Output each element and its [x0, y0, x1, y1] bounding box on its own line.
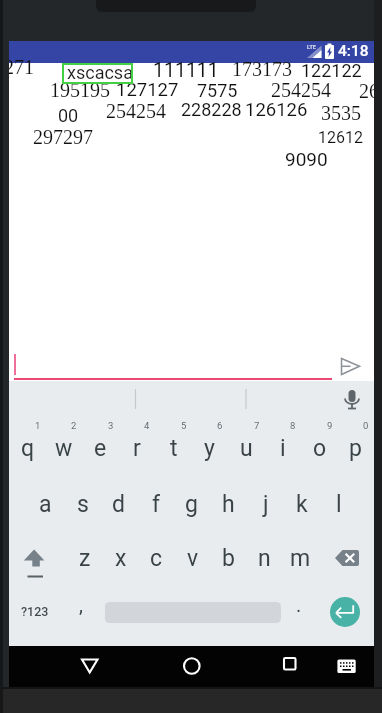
button[interactable]: j — [247, 491, 284, 521]
staticText: ?123 — [21, 604, 49, 619]
staticText: o — [313, 435, 327, 462]
staticText: c — [150, 545, 163, 572]
button[interactable]: x — [102, 545, 139, 575]
staticText: , — [79, 593, 83, 616]
staticText: 195195 — [50, 79, 110, 101]
button[interactable]: d — [100, 491, 137, 521]
button[interactable]: e — [82, 424, 119, 468]
button[interactable]: u — [228, 424, 265, 468]
button[interactable]: z — [66, 545, 103, 575]
staticText: 9 — [327, 420, 333, 431]
staticText: j — [263, 491, 269, 518]
staticText: 2 — [71, 420, 77, 431]
button[interactable]: p — [337, 424, 374, 468]
staticText: 3535 — [321, 102, 361, 124]
button[interactable]: w — [45, 424, 82, 468]
button[interactable] — [337, 354, 363, 379]
staticText: f — [152, 491, 160, 518]
staticText: d — [112, 491, 125, 518]
button[interactable]: y — [191, 424, 228, 468]
staticText: w — [55, 435, 73, 462]
button[interactable]: g — [173, 491, 210, 521]
staticText: i — [280, 435, 286, 462]
button[interactable]: , — [69, 589, 93, 625]
staticText: q — [21, 435, 35, 462]
staticText: k — [296, 491, 308, 518]
button[interactable]: n — [246, 545, 283, 575]
staticText: 122122 — [301, 60, 362, 81]
staticText: p — [349, 435, 362, 462]
button[interactable]: q — [9, 424, 46, 468]
staticText: 254254 — [106, 100, 166, 122]
staticText: LTE — [307, 44, 316, 50]
button[interactable] — [72, 649, 109, 683]
staticText: 7575 — [197, 80, 238, 101]
button[interactable] — [173, 649, 210, 683]
staticText: 173173 — [232, 58, 292, 80]
staticText: a — [39, 491, 52, 518]
staticText: h — [222, 491, 235, 518]
button[interactable]: c — [138, 545, 175, 575]
button[interactable]: m — [282, 545, 319, 575]
button[interactable]: f — [137, 491, 174, 521]
button[interactable]: l — [320, 491, 357, 521]
staticText: 12612 — [318, 128, 363, 147]
staticText: 6 — [217, 420, 223, 431]
staticText: l — [336, 491, 342, 518]
button[interactable] — [330, 597, 360, 627]
staticText: 3 — [108, 420, 114, 431]
staticText: 1 — [35, 420, 41, 431]
staticText: 127127 — [116, 79, 179, 101]
staticText: 254254 — [271, 79, 331, 101]
button[interactable]: ?123 — [12, 593, 58, 629]
staticText: x — [115, 545, 127, 572]
button[interactable]: v — [174, 545, 211, 575]
button[interactable]: . — [287, 589, 311, 625]
staticText: 4 — [144, 420, 150, 431]
staticText: r — [133, 435, 141, 462]
staticText: xscacsa — [67, 62, 133, 83]
staticText: 0 — [363, 420, 369, 431]
staticText: 2626 — [359, 80, 374, 102]
staticText: y — [204, 435, 215, 462]
button[interactable]: h — [210, 491, 247, 521]
staticText: 111111 — [153, 59, 219, 82]
button[interactable] — [331, 651, 359, 673]
button[interactable]: i — [264, 424, 301, 468]
button[interactable]: t — [155, 424, 192, 468]
staticText: n — [258, 545, 271, 572]
button[interactable]: a — [27, 491, 64, 521]
staticText: 126126 — [245, 99, 308, 121]
staticText: t — [170, 435, 178, 462]
staticText: z — [79, 545, 91, 572]
staticText: 8 — [290, 420, 296, 431]
staticText: 9090 — [285, 148, 328, 170]
staticText: 7 — [254, 420, 260, 431]
button[interactable]: s — [64, 491, 101, 521]
staticText: 271 — [9, 56, 34, 78]
staticText: g — [185, 491, 198, 518]
button[interactable]: b — [210, 545, 247, 575]
staticText: u — [240, 435, 253, 462]
staticText: m — [290, 545, 311, 572]
staticText: 228228 — [181, 99, 242, 120]
staticText: s — [77, 491, 89, 518]
button[interactable] — [262, 649, 299, 683]
button[interactable]: k — [283, 491, 320, 521]
button[interactable]: r — [118, 424, 155, 468]
staticText: 00 — [58, 105, 79, 126]
staticText: 297297 — [33, 126, 93, 148]
staticText: 5 — [181, 420, 187, 431]
button[interactable]: o — [301, 424, 338, 468]
staticText: v — [187, 545, 199, 572]
staticText: 4:18 — [338, 42, 369, 60]
staticText: e — [94, 435, 107, 462]
staticText: b — [222, 545, 235, 572]
staticText: . — [296, 593, 302, 616]
